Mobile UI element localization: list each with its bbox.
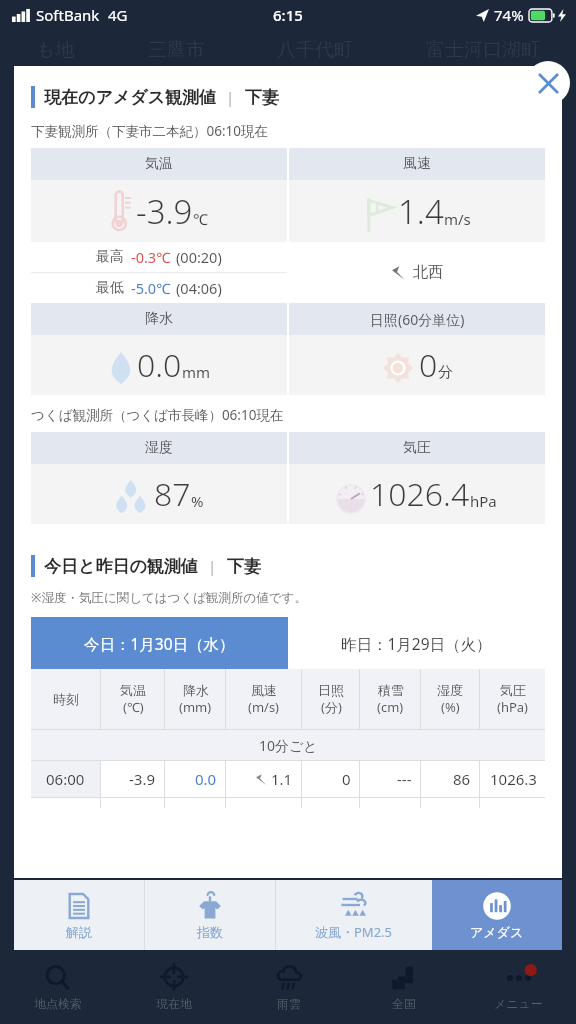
staticText: 降水 [183,682,209,698]
staticText: 1.4 [398,189,444,234]
staticText: 0.0 [195,769,217,789]
staticText: 10分ごと [259,736,318,755]
staticText: (mm) [179,698,212,716]
staticText: 下妻観測所（下妻市二本紀）06:10現在 [31,122,269,140]
staticText: (%) [441,698,460,716]
staticText: 今日：1月30日（水） [84,633,235,654]
staticText: 風速 [403,155,431,173]
staticText: 湿度 [437,682,463,698]
staticText: % [191,491,204,511]
staticText: 気温 [120,682,146,698]
staticText: 1.1 [271,769,293,789]
staticText: 最低 [96,279,124,297]
staticText: -3.9 [129,769,156,789]
button[interactable]: 雨雲 [231,950,346,1024]
staticText: 下妻 [245,87,279,108]
staticText: 86 [453,769,471,789]
staticText: 6:15 [273,5,303,25]
staticText: 最高 [96,248,124,266]
staticText: アメダス [470,924,524,940]
staticText: | [226,87,235,107]
staticText: 時刻 [53,691,79,707]
staticText: --- [397,769,412,789]
staticText: 74% [494,5,524,25]
staticText: hPa [470,491,497,511]
staticText: 87 [154,472,191,516]
staticText: 0.0 [137,343,182,387]
staticText: も地 [36,38,75,62]
staticText: mm [182,362,211,382]
staticText: 今日と昨日の観測値 [44,556,198,577]
staticText: 気圧 [403,439,431,457]
button[interactable]: 昨日：1月29日（火） [288,617,545,669]
button[interactable]: メニュー [461,950,576,1024]
staticText: 日照 [318,682,344,698]
staticText: 昨日：1月29日（火） [341,633,492,654]
staticText: (cm) [377,698,404,716]
staticText: 06:00 [46,769,85,789]
staticText: (℃) [123,698,144,716]
staticText: (m/s) [248,698,280,716]
staticText: -3.9 [136,189,193,234]
button[interactable]: 閉じる [526,61,570,105]
staticText: 現在地 [156,996,192,1011]
button[interactable]: 全国 [346,950,461,1024]
staticText: -0.3℃ [131,247,171,267]
staticText: 下妻 [227,556,261,577]
button[interactable]: 指数 [145,880,275,950]
staticText: (04:06) [176,278,222,298]
staticText: 三鷹市 [148,38,205,62]
staticText: 分 [438,363,453,382]
staticText: 気温 [145,155,173,173]
staticText: SoftBank [36,5,100,25]
staticText: 1026.3 [490,769,537,789]
staticText: 全国 [392,996,416,1011]
staticText: 富士河口湖町 [426,38,540,62]
staticText: 波風・PM2.5 [315,923,393,941]
staticText: 現在のアメダス観測値 [44,87,216,108]
staticText: (hPa) [497,698,528,716]
staticText: (00:20) [176,247,222,267]
staticText: 湿度 [145,439,173,457]
button[interactable]: 波風・PM2.5 [276,880,432,950]
staticText: 積雪 [378,682,404,698]
staticText: ※湿度・気圧に関してはつくば観測所の値です。 [31,589,307,606]
staticText: 4G [108,5,128,25]
staticText: 雨雲 [277,996,301,1011]
staticText: m/s [444,209,471,229]
button[interactable]: 地点検索 [0,950,116,1024]
staticText: 0 [342,769,351,789]
staticText: 北西 [413,263,443,282]
staticText: ℃ [193,209,208,229]
staticText: 気圧 [500,682,526,698]
staticText: 0 [419,343,438,387]
staticText: 1026.4 [370,472,470,516]
button[interactable]: アメダス [432,880,562,950]
staticText: 風速 [251,682,277,698]
staticText: つくば観測所（つくば市長峰）06:10現在 [31,406,284,424]
staticText: | [208,556,217,576]
staticText: 指数 [197,924,223,940]
staticText: 地点検索 [34,996,82,1011]
staticText: 解説 [66,924,92,940]
staticText: -5.0℃ [131,278,171,298]
staticText: 八千代町 [277,38,353,62]
button[interactable]: 現在地 [116,950,231,1024]
staticText: メニュー [494,996,543,1011]
staticText: 日照(60分単位) [370,310,465,329]
button[interactable]: 今日：1月30日（水） [31,617,288,669]
button[interactable]: 解説 [14,880,144,950]
staticText: (分) [321,698,342,716]
staticText: 降水 [145,310,173,328]
